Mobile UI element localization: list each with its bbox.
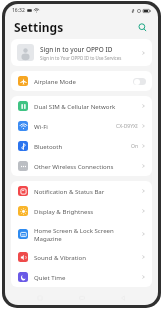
button[interactable]: Display & Brightness (11, 201, 152, 221)
staticText: Dual SIM & Cellular Network (34, 102, 116, 110)
button[interactable]: Sound & Vibration (11, 247, 152, 267)
staticText: Wi-Fi (34, 122, 48, 130)
button[interactable]: Notification & Status Bar (11, 181, 152, 201)
staticText: 16:32 (12, 7, 25, 14)
button[interactable]: Other Wireless Connections (11, 156, 152, 176)
staticText: Sound & Vibration (34, 253, 86, 261)
staticText: Notification & Status Bar (34, 187, 105, 195)
button[interactable]: Home Screen & Lock Screen (11, 221, 152, 247)
button[interactable]: Sign in to your OPPO ID (11, 39, 152, 66)
staticText: Sign in to your OPPO ID (40, 45, 113, 54)
staticText: Bluetooth (34, 142, 63, 150)
staticText: CX-D9YXI (116, 123, 138, 130)
button[interactable]: Quiet Time (11, 267, 152, 287)
button[interactable]: Airplane Mode (11, 71, 152, 91)
staticText: Display & Brightness (34, 207, 94, 215)
button[interactable]: Airplane Mode (133, 78, 146, 85)
staticText: Settings (14, 19, 64, 35)
button[interactable]: Search (135, 20, 149, 34)
button[interactable]: Dual SIM & Cellular Network (11, 96, 152, 116)
staticText: Airplane Mode (34, 77, 76, 85)
staticText: Quiet Time (34, 273, 66, 281)
staticText: Sign in to Your OPPO ID to Use Services (40, 55, 122, 61)
staticText: Home Screen & Lock Screen (34, 226, 114, 234)
staticText: On (131, 143, 138, 150)
button[interactable]: Bluetooth (11, 136, 152, 156)
staticText: Other Wireless Connections (34, 162, 114, 170)
staticText: Magazine (34, 234, 62, 242)
button[interactable]: Wi-Fi (11, 116, 152, 136)
